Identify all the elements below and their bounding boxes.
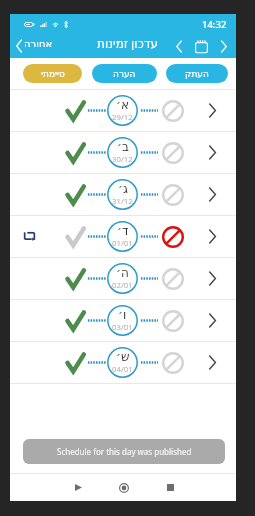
button[interactable]: ש׳ <box>10 342 236 383</box>
button[interactable]: ב׳ <box>10 132 236 173</box>
staticText: העתק <box>185 69 209 79</box>
staticText: ו׳ <box>118 308 127 322</box>
staticText: 03/01 <box>112 322 133 333</box>
button[interactable]: Recents <box>157 474 183 501</box>
staticText: 02/01 <box>112 280 133 291</box>
other: Swap shift <box>24 231 35 242</box>
button[interactable]: סיימתי <box>23 64 82 83</box>
staticText: א׳ <box>116 98 130 112</box>
staticText: 14:32 <box>202 18 227 31</box>
staticText: Schedule for this day was published <box>57 446 192 457</box>
button[interactable]: Schedule for this day was published <box>23 439 225 464</box>
staticText: אחורה <box>24 38 53 50</box>
button[interactable]: ג׳ <box>10 174 236 215</box>
staticText: 01/01 <box>112 238 133 249</box>
button[interactable]: אחורה <box>13 37 56 55</box>
staticText: ש׳ <box>116 350 130 364</box>
button[interactable]: Next day <box>215 38 232 55</box>
staticText: 30/12 <box>112 154 133 165</box>
button[interactable]: Swap shift <box>10 216 236 257</box>
staticText: ג׳ <box>118 182 128 196</box>
button[interactable]: Previous day <box>170 38 187 55</box>
button[interactable]: Calendar <box>192 37 210 55</box>
button[interactable]: Home <box>111 474 137 501</box>
button[interactable]: העתק <box>166 64 228 83</box>
staticText: עדכון זמינות <box>97 35 159 51</box>
staticText: סיימתי <box>41 69 65 79</box>
button[interactable]: ו׳ <box>10 300 236 341</box>
staticText: 04/01 <box>112 364 133 375</box>
staticText: הערה <box>113 69 136 79</box>
button[interactable]: Back <box>65 474 91 501</box>
staticText: ד׳ <box>117 224 129 238</box>
button[interactable]: ה׳ <box>10 258 236 299</box>
staticText: ה׳ <box>116 266 129 280</box>
button[interactable]: הערה <box>92 64 157 83</box>
staticText: 29/12 <box>112 112 133 123</box>
staticText: ב׳ <box>117 140 129 154</box>
button[interactable]: א׳ <box>10 90 236 131</box>
staticText: 31/12 <box>112 196 133 207</box>
